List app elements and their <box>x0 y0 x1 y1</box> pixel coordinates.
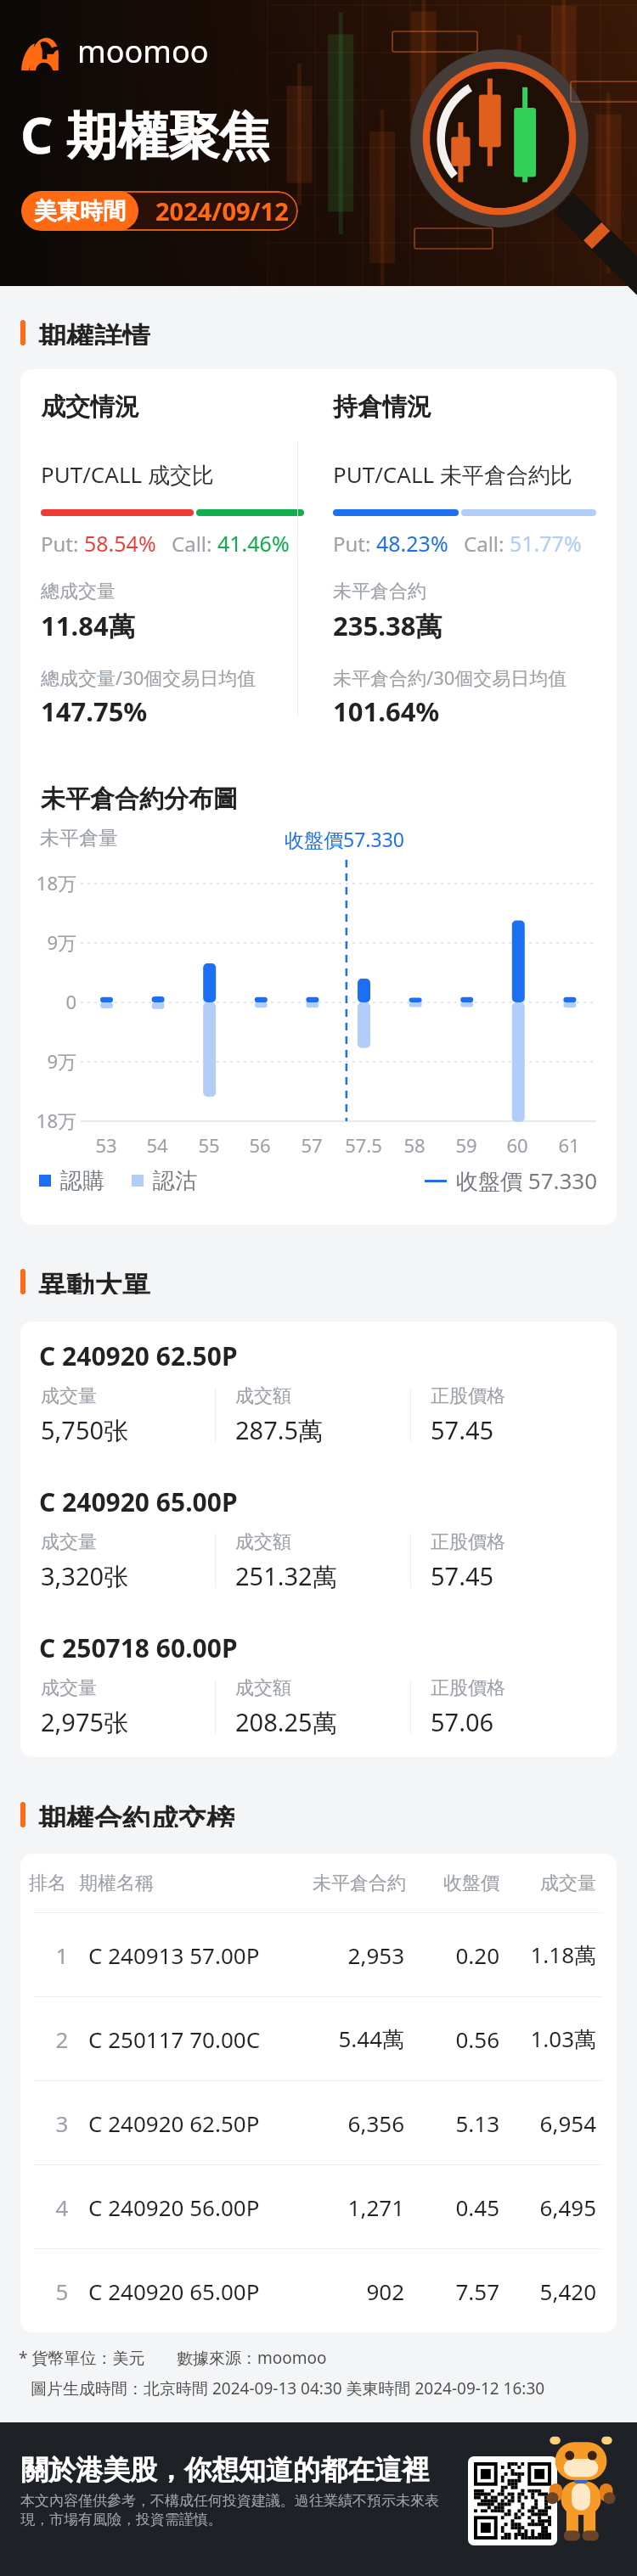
staticText: 認沽 <box>153 1167 197 1195</box>
staticText: 0.20 <box>397 1940 499 1970</box>
staticText: 0.56 <box>397 2024 499 2054</box>
staticText: 未平倉合約分布圖 <box>41 783 238 815</box>
staticText: 關於港美股，你想知道的都在這裡 <box>21 2453 429 2487</box>
staticText: 成交量 <box>41 1530 97 1554</box>
staticText: 2 <box>49 2024 75 2054</box>
staticText: 2,953 <box>279 1940 404 1970</box>
button[interactable]: C 250718 60.00P <box>20 1630 617 1757</box>
staticText: 4 <box>49 2192 75 2222</box>
staticText: 美東時間 <box>34 197 126 226</box>
staticText: PUT/CALL 未平倉合約比 <box>333 459 572 490</box>
staticText: Call: <box>172 530 217 558</box>
staticText: Put: <box>41 530 84 558</box>
staticText: 總成交量/30個交易日均值 <box>41 665 256 690</box>
staticText: moomoo <box>77 31 209 72</box>
staticText: 60 <box>492 1132 543 1158</box>
staticText: 本文內容僅供參考，不構成任何投資建議。過往業績不預示未來表 <box>20 2492 439 2510</box>
staticText: 認購 <box>60 1167 104 1195</box>
staticText: 成交量 <box>494 1872 596 1895</box>
button[interactable]: 3 <box>20 2081 617 2164</box>
staticText: 6,495 <box>494 2192 596 2222</box>
staticText: 7.57 <box>397 2276 499 2306</box>
staticText: 18万 <box>28 870 76 895</box>
staticText: 59 <box>441 1132 492 1158</box>
staticText: 成交量 <box>41 1384 97 1408</box>
button[interactable]: 2 <box>20 1997 617 2080</box>
staticText: 251.32萬 <box>235 1559 337 1593</box>
staticText: 58.54% <box>84 529 156 558</box>
staticText: 總成交量 <box>41 580 116 603</box>
staticText: C 240920 62.50P <box>39 1339 238 1373</box>
staticText: 未平倉合約 <box>279 1872 406 1895</box>
staticText: 3,320张 <box>41 1559 129 1593</box>
staticText: 57.45 <box>431 1413 494 1446</box>
staticText: 6,954 <box>494 2108 596 2138</box>
staticText: 5 <box>49 2276 75 2306</box>
staticText: 61 <box>544 1132 595 1158</box>
staticText: 0 <box>28 989 76 1014</box>
staticText: * 貨幣單位：美元 <box>19 2347 145 2369</box>
staticText: 正股價格 <box>431 1530 505 1554</box>
staticText: 收盤價57.330 <box>285 826 404 852</box>
staticText: PUT/CALL 成交比 <box>41 459 214 490</box>
staticText: 期權名稱 <box>79 1872 154 1895</box>
staticText: 9万 <box>28 1048 76 1074</box>
staticText: 18万 <box>28 1108 76 1133</box>
staticText: 數據來源：moomoo <box>177 2347 327 2369</box>
staticText: 成交額 <box>235 1676 291 1700</box>
staticText: 41.46% <box>217 529 290 558</box>
staticText: 成交額 <box>235 1384 291 1408</box>
staticText: C 240920 62.50P <box>88 2108 260 2138</box>
staticText: 11.84萬 <box>41 608 135 643</box>
staticText: 53 <box>81 1132 132 1158</box>
staticText: 收盤價 <box>397 1872 499 1895</box>
staticText: 5.13 <box>397 2108 499 2138</box>
staticText: 未平倉量 <box>40 826 118 850</box>
staticText: 54 <box>132 1132 183 1158</box>
staticText: 57.5 <box>338 1132 389 1158</box>
staticText: 57.45 <box>431 1559 494 1592</box>
staticText: 902 <box>279 2276 404 2306</box>
staticText: 收盤價 57.330 <box>456 1165 598 1196</box>
staticText: 57.06 <box>431 1705 494 1738</box>
button[interactable]: 4 <box>20 2165 617 2248</box>
button[interactable]: 5 <box>20 2249 617 2332</box>
staticText: 5,420 <box>494 2276 596 2306</box>
staticText: 287.5萬 <box>235 1413 324 1447</box>
staticText: 55 <box>183 1132 234 1158</box>
staticText: C 250718 60.00P <box>39 1630 238 1665</box>
staticText: 1,271 <box>279 2192 404 2222</box>
staticText: Put: <box>333 530 376 558</box>
staticText: 未平倉合約 <box>333 580 426 603</box>
staticText: C 期權聚焦 <box>20 99 271 169</box>
staticText: 正股價格 <box>431 1384 505 1408</box>
staticText: 1.03萬 <box>494 2023 596 2054</box>
staticText: C 240913 57.00P <box>88 1940 260 1970</box>
staticText: 101.64% <box>333 693 440 729</box>
staticText: 208.25萬 <box>235 1705 337 1739</box>
staticText: 現，市場有風險，投資需謹慎。 <box>20 2511 223 2528</box>
staticText: 正股價格 <box>431 1676 505 1700</box>
button[interactable]: 1 <box>20 1913 617 1996</box>
staticText: 成交情況 <box>41 391 139 423</box>
staticText: 58 <box>389 1132 440 1158</box>
staticText: 異動大單 <box>38 1269 150 1294</box>
button[interactable]: C 240920 65.00P <box>20 1484 617 1614</box>
staticText: 48.23% <box>376 529 448 558</box>
staticText: 排名 <box>29 1872 66 1895</box>
staticText: 9万 <box>28 929 76 955</box>
staticText: 1 <box>49 1940 75 1970</box>
staticText: 51.77% <box>510 529 582 558</box>
staticText: C 240920 65.00P <box>39 1484 238 1519</box>
staticText: 持倉情況 <box>333 391 431 423</box>
staticText: Call: <box>464 530 510 558</box>
button[interactable]: C 240920 62.50P <box>20 1339 617 1468</box>
staticText: C 250117 70.00C <box>88 2024 261 2054</box>
staticText: 未平倉合約/30個交易日均值 <box>333 665 567 690</box>
staticText: 成交量 <box>41 1676 97 1700</box>
staticText: 5,750张 <box>41 1413 129 1447</box>
staticText: 147.75% <box>41 693 148 729</box>
staticText: 3 <box>49 2108 75 2138</box>
staticText: 期權合約成交榜 <box>38 1802 234 1827</box>
staticText: C 240920 56.00P <box>88 2192 260 2222</box>
